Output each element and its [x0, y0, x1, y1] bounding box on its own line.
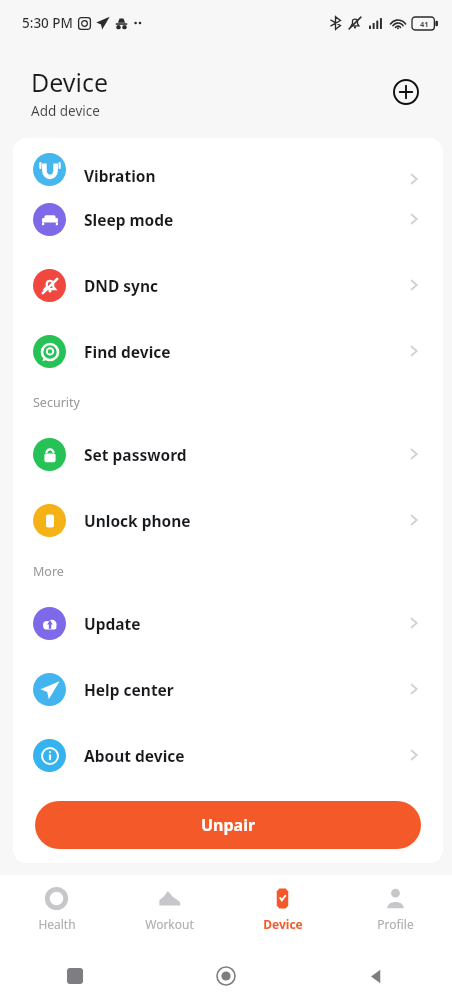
- staticText: Add device: [31, 102, 100, 120]
- staticText: Set password: [84, 444, 407, 465]
- staticText: 5:30 PM: [22, 14, 73, 32]
- button[interactable]: Back: [368, 968, 385, 985]
- button[interactable]: Add device: [388, 74, 424, 110]
- button[interactable]: Unpair: [35, 801, 421, 849]
- staticText: Unpair: [201, 814, 256, 836]
- button[interactable]: Unlock phone: [13, 487, 443, 553]
- button[interactable]: Workout: [113, 875, 226, 951]
- staticText: Security: [33, 394, 80, 411]
- button[interactable]: About device: [13, 722, 443, 788]
- staticText: Workout: [145, 916, 194, 932]
- staticText: Profile: [377, 916, 414, 932]
- staticText: Sleep mode: [84, 209, 407, 230]
- staticText: Unlock phone: [84, 510, 407, 531]
- staticText: Vibration: [84, 165, 407, 186]
- button[interactable]: Home: [216, 966, 236, 986]
- staticText: Find device: [84, 341, 407, 362]
- staticText: Health: [38, 916, 76, 932]
- button[interactable]: Profile: [339, 875, 452, 951]
- staticText: About device: [84, 745, 407, 766]
- button[interactable]: Device: [226, 875, 339, 951]
- button[interactable]: Help center: [13, 656, 443, 722]
- staticText: Update: [84, 613, 407, 634]
- staticText: Help center: [84, 679, 407, 700]
- button[interactable]: Sleep mode: [13, 186, 443, 252]
- button[interactable]: Vibration: [13, 138, 443, 186]
- button[interactable]: Find device: [13, 318, 443, 384]
- staticText: DND sync: [84, 275, 407, 296]
- button[interactable]: Set password: [13, 421, 443, 487]
- button[interactable]: Health: [0, 875, 113, 951]
- staticText: Device: [31, 65, 109, 99]
- button[interactable]: Recents: [67, 968, 83, 984]
- button[interactable]: Update: [13, 590, 443, 656]
- staticText: More: [33, 563, 64, 580]
- button[interactable]: DND sync: [13, 252, 443, 318]
- staticText: 41: [420, 19, 429, 29]
- staticText: Device: [263, 916, 303, 932]
